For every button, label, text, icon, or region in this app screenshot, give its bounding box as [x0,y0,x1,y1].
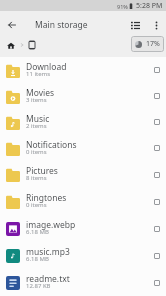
staticText: 91% [117,3,128,10]
button[interactable]: Select [150,168,164,182]
staticText: 8 items [26,174,47,182]
staticText: 0 items [26,148,47,156]
button[interactable]: Ringtones [0,188,166,215]
staticText: 0 items [26,201,47,209]
button[interactable]: Download [0,57,166,83]
button[interactable]: readme.txt [0,269,166,296]
button[interactable]: Movies [0,83,166,109]
button[interactable]: Music [0,109,166,135]
button[interactable]: Back [0,13,24,37]
button[interactable]: Device [26,39,38,51]
staticText: 11 items [26,70,51,78]
staticText: Pictures [26,165,58,177]
button[interactable]: Pictures [0,161,166,188]
staticText: music.mp3 [26,246,70,258]
staticText: Download [26,61,67,73]
staticText: Ringtones [26,192,67,204]
staticText: Music [26,113,50,125]
button[interactable]: Select [150,195,164,209]
button[interactable]: Select [150,63,164,77]
button[interactable]: Select [150,115,164,129]
button[interactable]: Select [150,222,164,236]
button[interactable]: music.mp3 [0,242,166,269]
staticText: readme.txt [26,273,70,285]
staticText: 6.18 MB [26,255,49,263]
button[interactable]: image.webp [0,215,166,242]
staticText: 3 items [26,96,47,104]
button[interactable]: Select [150,141,164,155]
button[interactable]: 17% [131,36,164,52]
button[interactable]: Home [4,38,18,52]
button[interactable]: View mode [124,14,146,36]
button[interactable]: Select [150,249,164,263]
staticText: 2 items [26,122,47,130]
staticText: 6.18 MB [26,228,49,236]
button[interactable]: Notifications [0,135,166,161]
staticText: Movies [26,87,55,99]
button[interactable]: Select [150,89,164,103]
staticText: 17% [146,39,160,49]
staticText: Notifications [26,139,77,151]
button[interactable]: Select [150,276,164,290]
staticText: Main storage [35,19,88,31]
staticText: 12.87 KB [26,282,51,290]
button[interactable]: More options [146,15,166,35]
staticText: image.webp [26,219,76,231]
staticText: 5:28 PM [136,1,163,11]
